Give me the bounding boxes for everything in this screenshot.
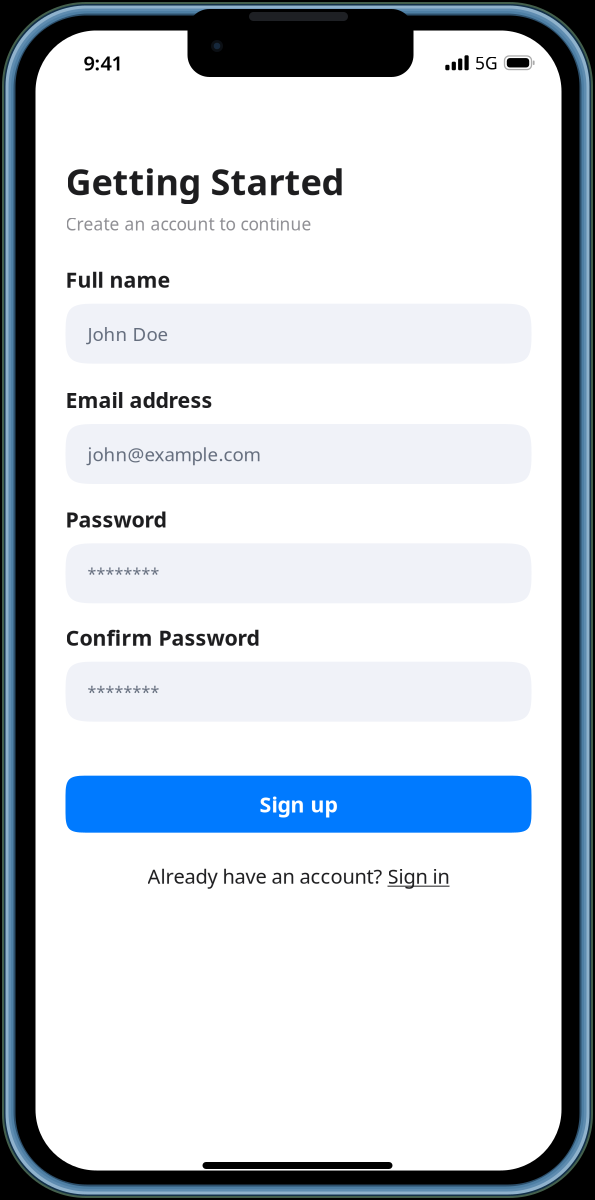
- button[interactable]: ********: [65, 662, 531, 722]
- staticText: Sign up: [259, 790, 337, 818]
- staticText: Already have an account?: [147, 863, 387, 889]
- staticText: Full name: [65, 265, 170, 294]
- staticText: 5G: [475, 51, 498, 74]
- button[interactable]: John Doe: [65, 304, 531, 364]
- button[interactable]: john@example.com: [65, 424, 531, 484]
- staticText: john@example.com: [87, 442, 260, 466]
- button[interactable]: ********: [65, 543, 531, 603]
- staticText: Confirm Password: [65, 623, 259, 652]
- staticText: 9:41: [83, 49, 122, 76]
- button[interactable]: Already have an account?: [65, 863, 531, 889]
- staticText: Sign in: [387, 863, 449, 889]
- staticText: ********: [87, 681, 159, 702]
- staticText: Password: [65, 505, 166, 533]
- staticText: Create an account to continue: [65, 212, 311, 235]
- staticText: ********: [87, 563, 159, 584]
- button[interactable]: Sign up: [65, 776, 531, 833]
- staticText: John Doe: [87, 321, 168, 346]
- staticText: Email address: [65, 386, 212, 414]
- staticText: Getting Started: [65, 157, 344, 205]
